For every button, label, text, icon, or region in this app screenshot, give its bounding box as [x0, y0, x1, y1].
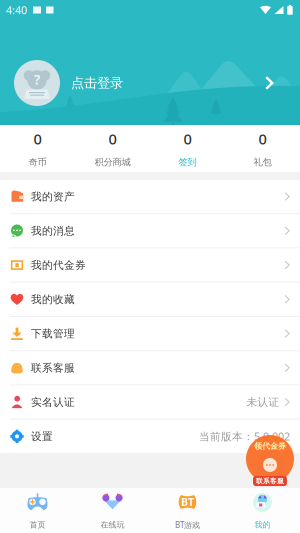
staticText: 签到: [178, 156, 196, 168]
button[interactable]: 联系客服: [242, 429, 298, 489]
staticText: BT游戏: [175, 519, 200, 530]
staticText: 设置: [31, 430, 53, 443]
staticText: 我的资产: [31, 190, 75, 203]
staticText: 我的收藏: [31, 293, 75, 306]
button[interactable]: 首页: [0, 487, 75, 533]
staticText: 0: [33, 129, 41, 148]
staticText: 0: [108, 129, 116, 148]
button[interactable]: 0: [150, 125, 225, 172]
staticText: 实名认证: [31, 396, 75, 409]
staticText: 我的: [254, 520, 270, 530]
staticText: 我的消息: [31, 224, 75, 237]
staticText: 领代金券: [254, 441, 286, 451]
button[interactable]: 0: [225, 125, 300, 172]
button[interactable]: 下载管理: [0, 317, 300, 350]
staticText: 下载管理: [31, 327, 75, 340]
button[interactable]: 实名认证: [0, 385, 300, 419]
button[interactable]: 我的代金券: [0, 248, 300, 282]
staticText: 0: [183, 129, 191, 148]
staticText: 积分商城: [94, 156, 130, 168]
button[interactable]: 联系客服: [0, 351, 300, 384]
staticText: ?: [34, 71, 40, 88]
button[interactable]: 我的资产: [0, 180, 300, 213]
staticText: 0: [258, 129, 266, 148]
button[interactable]: 我的消息: [0, 214, 300, 247]
staticText: 联系客服: [256, 477, 284, 485]
staticText: 我的代金券: [31, 259, 86, 272]
button[interactable]: 在线玩: [75, 487, 150, 533]
staticText: 点击登录: [71, 75, 123, 91]
button[interactable]: BT: [150, 487, 225, 533]
staticText: 礼包: [253, 156, 271, 168]
staticText: BT: [181, 495, 194, 509]
staticText: 当前版本：5.0.002: [199, 429, 290, 443]
staticText: 在线玩: [100, 520, 124, 530]
staticText: 未认证: [246, 396, 279, 409]
button[interactable]: 0: [75, 125, 150, 172]
button[interactable]: 0: [0, 125, 75, 172]
button[interactable]: ?: [0, 20, 300, 125]
staticText: 联系客服: [31, 361, 75, 374]
staticText: 首页: [29, 520, 45, 530]
button[interactable]: 设置: [0, 420, 300, 453]
staticText: 奇币: [28, 156, 46, 168]
staticText: 4:40: [6, 3, 27, 17]
button[interactable]: 我的: [225, 487, 300, 533]
button[interactable]: 我的收藏: [0, 283, 300, 316]
